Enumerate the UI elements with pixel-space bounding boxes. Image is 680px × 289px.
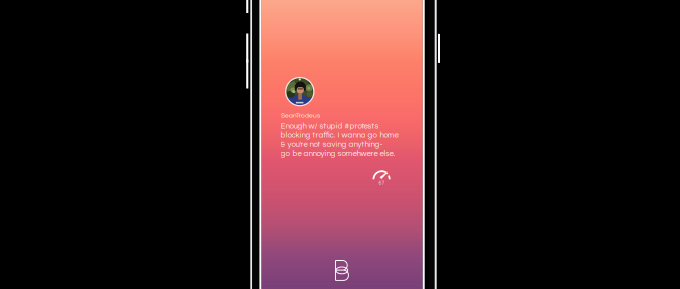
staticText: blocking traffic. I wanna go home bbox=[280, 131, 398, 139]
staticText: 67 bbox=[378, 181, 384, 186]
staticText: Enough w/ stupid #protests bbox=[280, 122, 378, 130]
staticText: & you're not saving anything- bbox=[280, 140, 382, 148]
staticText: go be annoying somehwere else. bbox=[280, 149, 395, 158]
staticText: SeanTrodeus bbox=[281, 112, 320, 119]
